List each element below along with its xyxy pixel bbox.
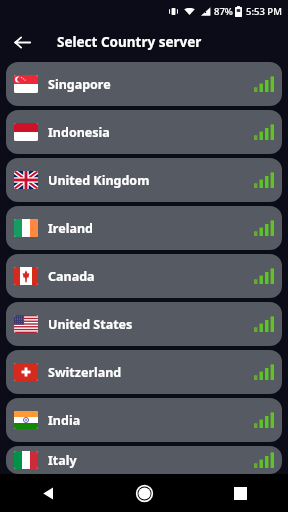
- staticText: 87%: [214, 5, 233, 18]
- button[interactable]: Singapore: [6, 62, 282, 106]
- staticText: Canada: [48, 268, 95, 285]
- staticText: Ireland: [48, 220, 93, 237]
- button[interactable]: Back: [8, 28, 36, 56]
- button[interactable]: Italy: [6, 446, 282, 474]
- button[interactable]: United States: [6, 302, 282, 346]
- staticText: Singapore: [48, 76, 111, 93]
- button[interactable]: Recents: [192, 474, 288, 512]
- button[interactable]: Indonesia: [6, 110, 282, 154]
- staticText: India: [48, 412, 81, 429]
- button[interactable]: Switzerland: [6, 350, 282, 394]
- button[interactable]: Back: [0, 474, 96, 512]
- staticText: United Kingdom: [48, 172, 150, 189]
- button[interactable]: India: [6, 398, 282, 442]
- button[interactable]: United Kingdom: [6, 158, 282, 202]
- button[interactable]: Ireland: [6, 206, 282, 250]
- button[interactable]: Canada: [6, 254, 282, 298]
- button[interactable]: Home: [96, 474, 192, 512]
- staticText: Select Country server: [57, 33, 202, 51]
- staticText: United States: [48, 316, 133, 333]
- staticText: Switzerland: [48, 364, 122, 381]
- staticText: Italy: [48, 452, 77, 469]
- staticText: 5:53 PM: [246, 5, 282, 18]
- staticText: Indonesia: [48, 124, 110, 141]
